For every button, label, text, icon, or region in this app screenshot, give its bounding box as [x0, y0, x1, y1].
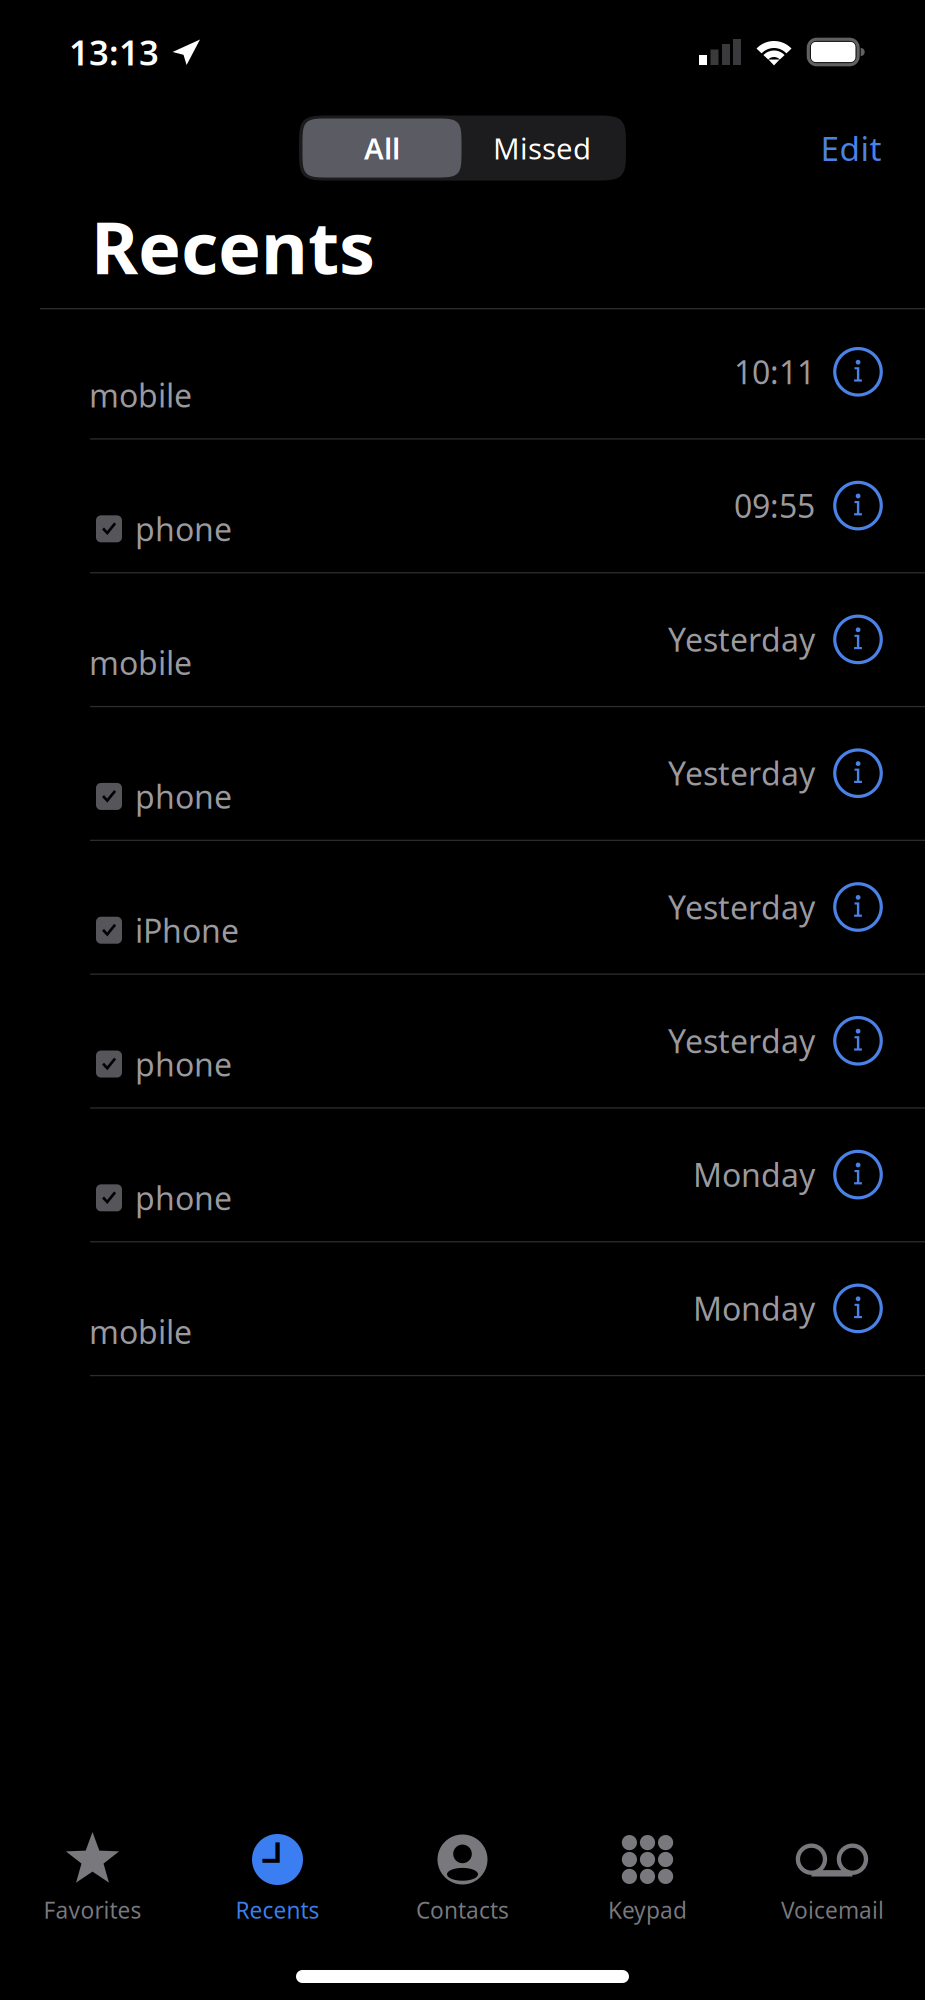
staticText: Favorites: [43, 1895, 141, 1925]
staticText: 13:13: [69, 29, 159, 75]
staticText: Yesterday: [668, 1020, 815, 1062]
button[interactable]: Contact Name: [0, 1242, 925, 1376]
button[interactable]: Call details: [828, 877, 888, 937]
staticText: mobile: [89, 641, 192, 684]
button[interactable]: Contact Name: [0, 975, 925, 1109]
staticText: Recents: [235, 1895, 319, 1925]
button[interactable]: Contact Name: [0, 707, 925, 841]
button[interactable]: Missed: [461, 118, 622, 177]
staticText: 10:11: [734, 351, 815, 393]
button[interactable]: Call details: [828, 1278, 888, 1338]
button[interactable]: Contact Name: [0, 573, 925, 707]
staticText: phone: [135, 1177, 232, 1219]
staticText: Yesterday: [668, 618, 815, 661]
button[interactable]: Contact Name: [0, 1109, 925, 1242]
button[interactable]: Keypad: [555, 1825, 740, 1943]
staticText: Contacts: [416, 1895, 509, 1925]
button[interactable]: Edit: [806, 122, 896, 174]
button[interactable]: Call details: [828, 342, 888, 402]
staticText: Yesterday: [668, 886, 815, 928]
button[interactable]: Favorites: [0, 1825, 185, 1943]
staticText: iPhone: [135, 909, 239, 951]
staticText: phone: [135, 1043, 232, 1085]
staticText: Monday: [693, 1153, 815, 1196]
button[interactable]: Recents: [185, 1825, 370, 1943]
button[interactable]: Call details: [828, 743, 888, 803]
staticText: 09:55: [734, 484, 815, 527]
staticText: phone: [135, 775, 232, 818]
button[interactable]: Contact Name: [0, 841, 925, 975]
staticText: mobile: [89, 1310, 192, 1353]
button[interactable]: Call details: [828, 476, 888, 536]
button[interactable]: Contacts: [370, 1825, 555, 1943]
staticText: Missed: [493, 128, 591, 167]
staticText: Edit: [820, 126, 881, 170]
staticText: phone: [135, 508, 232, 550]
staticText: Yesterday: [668, 752, 815, 794]
button[interactable]: Call details: [828, 609, 888, 669]
staticText: Keypad: [608, 1895, 687, 1925]
button[interactable]: Contact Name: [0, 440, 925, 573]
button[interactable]: Call details: [828, 1011, 888, 1071]
staticText: Voicemail: [781, 1895, 884, 1925]
button[interactable]: Voicemail: [740, 1825, 925, 1943]
button[interactable]: All: [302, 118, 461, 177]
staticText: Recents: [91, 198, 375, 294]
button[interactable]: Contact Name: [0, 309, 925, 440]
staticText: Monday: [693, 1287, 815, 1330]
staticText: All: [364, 128, 400, 167]
staticText: mobile: [89, 374, 192, 416]
button[interactable]: Call details: [828, 1145, 888, 1205]
